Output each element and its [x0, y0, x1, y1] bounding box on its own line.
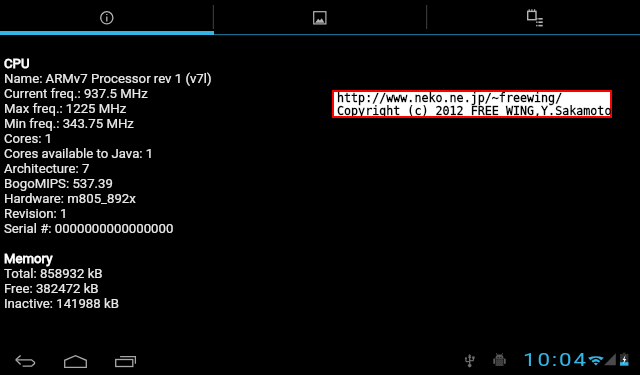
staticText: Hardware: m805_892x [4, 191, 136, 206]
button[interactable]: Recent apps [111, 348, 139, 374]
staticText: Name: ARMv7 Processor rev 1 (v7l) [4, 71, 212, 86]
other: USB debugging [493, 353, 506, 368]
staticText: Cores available to Java: 1 [4, 146, 154, 161]
button[interactable]: Back [11, 348, 39, 374]
staticText: Min freq.: 343.75 MHz [4, 116, 134, 131]
other: Battery charging [620, 352, 629, 366]
staticText: Total: 858932 kB [4, 266, 103, 281]
button[interactable]: Home [61, 348, 89, 374]
button[interactable]: Image tab [214, 0, 427, 36]
staticText: Cores: 1 [4, 131, 53, 146]
staticText: http://www.neko.ne.jp/~freewing/ [337, 92, 563, 105]
staticText: Memory [4, 251, 53, 266]
other: Mobile signal [604, 353, 616, 366]
other: Wi-Fi [588, 353, 604, 366]
button[interactable]: Device tab [427, 0, 640, 36]
staticText: Free: 382472 kB [4, 281, 99, 296]
staticText: Revision: 1 [4, 206, 68, 221]
staticText: CPU [4, 56, 30, 71]
staticText: 10:04 [523, 349, 589, 370]
staticText: Current freq.: 937.5 MHz [4, 86, 148, 101]
staticText: Max freq.: 1225 MHz [4, 101, 127, 116]
staticText: Inactive: 141988 kB [4, 296, 119, 311]
staticText: Copyright (c) 2012 FREE WING,Y.Sakamoto [337, 105, 612, 116]
button[interactable]: http://www.neko.ne.jp/~freewing/ [334, 92, 610, 116]
button[interactable]: CPU info tab [0, 0, 214, 36]
staticText: BogoMIPS: 537.39 [4, 176, 113, 191]
staticText: Serial #: 0000000000000000 [4, 221, 174, 236]
other: USB connected [465, 354, 475, 368]
staticText: Architecture: 7 [4, 161, 90, 176]
